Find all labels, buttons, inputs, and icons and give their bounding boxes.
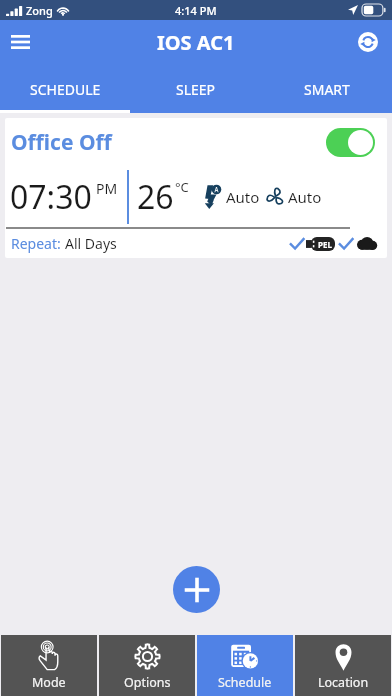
staticText: Mode [32,674,66,691]
staticText: SMART [304,80,350,99]
staticText: 07:30 [10,175,92,219]
button[interactable]: Schedule [197,635,293,696]
staticText: 4:14 PM [175,3,217,18]
button[interactable]: SLEEP [130,64,261,113]
button[interactable]: Options [99,635,195,696]
button[interactable]: Enable schedule [326,128,375,157]
staticText: SCHEDULE [30,80,101,99]
staticText: IOS AC1 [157,29,235,56]
staticText: PM [96,179,118,198]
button[interactable]: Location [295,635,391,696]
staticText: 26 [137,175,174,219]
staticText: Options [124,674,171,691]
button[interactable]: SCHEDULE [0,64,130,113]
staticText: PEL [318,239,332,250]
staticText: Auto [226,187,260,207]
staticText: Office Off [11,128,112,157]
button[interactable]: SMART [261,64,392,113]
staticText: SLEEP [176,80,216,99]
button[interactable]: Add schedule [173,566,220,613]
button[interactable]: Mode [1,635,97,696]
staticText: °C [175,178,189,196]
staticText: All Days [65,234,117,253]
staticText: Repeat: [11,234,65,253]
staticText: Schedule [218,674,272,691]
staticText: Zong [26,3,53,18]
button[interactable]: Menu [2,24,38,60]
button[interactable]: Sync [353,27,383,57]
button[interactable]: Office Off [5,118,387,258]
staticText: Location [318,674,369,691]
staticText: Auto [288,187,322,207]
